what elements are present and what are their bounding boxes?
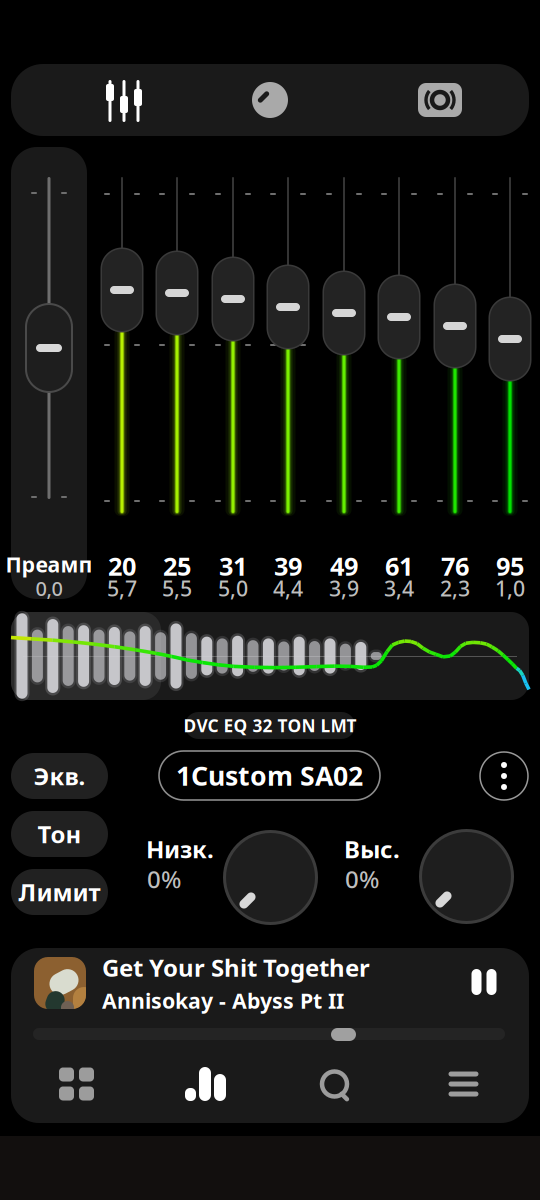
staticText: 1,0 xyxy=(495,574,525,602)
staticText: 61 xyxy=(385,549,413,583)
staticText: 39 xyxy=(274,549,302,583)
staticText: 2,3 xyxy=(440,574,470,602)
staticText: Get Your Shit Together xyxy=(102,951,370,983)
staticText: 5,7 xyxy=(107,574,137,602)
staticText: 95 xyxy=(496,549,524,583)
button[interactable]: Get Your Shit Together xyxy=(34,955,434,1011)
staticText: Экв. xyxy=(33,760,85,792)
staticText: 3,4 xyxy=(384,574,414,602)
staticText: 76 xyxy=(441,549,469,583)
button[interactable]: Лимит xyxy=(11,869,108,915)
staticText: Тон xyxy=(37,818,81,850)
staticText: 5,0 xyxy=(218,574,248,602)
staticText: Лимит xyxy=(18,876,100,908)
staticText: 25 xyxy=(163,549,191,583)
staticText: Выс. xyxy=(344,833,400,865)
staticText: Низк. xyxy=(146,833,214,865)
staticText: 49 xyxy=(330,549,358,583)
button[interactable]: Search xyxy=(270,1056,399,1112)
staticText: 0% xyxy=(345,863,379,895)
staticText: 4,4 xyxy=(273,574,303,602)
button[interactable]: More options xyxy=(480,752,528,800)
button[interactable]: Tone xyxy=(230,64,310,136)
staticText: 31 xyxy=(219,549,247,583)
staticText: 3,9 xyxy=(329,574,359,602)
staticText: Преамп xyxy=(5,550,92,578)
staticText: DVC EQ 32 TON LMT xyxy=(183,714,356,737)
button[interactable]: Tone knob xyxy=(419,829,514,924)
staticText: 0,0 xyxy=(35,575,62,602)
staticText: 5,5 xyxy=(162,574,192,602)
button[interactable]: Equalizer xyxy=(141,1056,270,1112)
button[interactable]: 1Custom SA02 xyxy=(159,751,380,800)
staticText: 1Custom SA02 xyxy=(176,758,363,793)
button[interactable]: Tone knob xyxy=(223,830,318,925)
staticText: 0% xyxy=(147,863,181,895)
button[interactable]: Playlists xyxy=(399,1056,528,1112)
button[interactable]: Тон xyxy=(11,811,108,857)
staticText: 20 xyxy=(108,549,136,583)
button[interactable]: Library xyxy=(12,1056,141,1112)
button[interactable]: Equalizer xyxy=(60,64,140,136)
button[interactable]: Pause xyxy=(458,959,510,1005)
button[interactable]: Surround xyxy=(400,64,480,136)
button[interactable]: Экв. xyxy=(11,753,108,799)
staticText: Annisokay - Abyss Pt II xyxy=(102,986,344,1015)
